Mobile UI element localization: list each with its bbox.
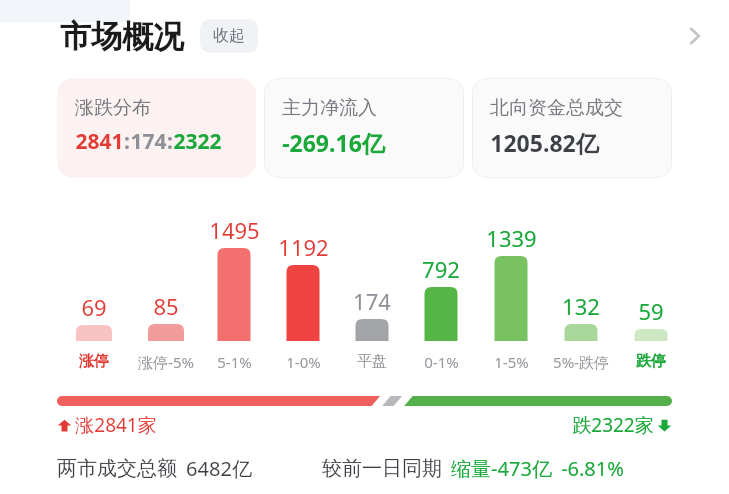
staticText: -6.81%: [561, 455, 624, 482]
staticText: 5-1%: [217, 352, 252, 372]
staticText: 1205.82亿: [490, 127, 599, 158]
staticText: 较前一日同期: [322, 456, 442, 481]
button[interactable]: 收起: [200, 19, 258, 53]
staticText: 1192: [278, 232, 329, 262]
staticText: 两市成交总额: [57, 456, 177, 481]
button[interactable]: 主力净流入: [264, 78, 464, 178]
staticText: 1339: [486, 223, 537, 253]
button[interactable]: 展开市场概况: [669, 10, 721, 62]
staticText: 85: [153, 291, 179, 321]
staticText: 市场概况: [60, 17, 184, 56]
staticText: 缩量-473亿: [451, 455, 552, 482]
staticText: 跌停: [636, 352, 666, 371]
staticText: 69: [81, 292, 107, 322]
staticText: 5%-跌停: [553, 352, 609, 372]
staticText: 收起: [213, 26, 245, 46]
staticText: 2322: [173, 127, 222, 156]
staticText: :: [167, 127, 173, 156]
staticText: 1-0%: [286, 352, 321, 372]
staticText: 涨2841家: [75, 412, 157, 438]
staticText: 1-5%: [494, 352, 529, 372]
button[interactable]: 涨跌分布: [57, 78, 256, 178]
staticText: 涨跌分布: [75, 96, 151, 120]
staticText: 0-1%: [424, 352, 459, 372]
staticText: 59: [638, 296, 664, 326]
staticText: 跌2322家: [572, 412, 654, 438]
button[interactable]: 北向资金总成交: [472, 78, 672, 178]
staticText: 涨停-5%: [138, 352, 194, 372]
staticText: :: [124, 127, 130, 156]
staticText: 涨停: [79, 352, 109, 371]
staticText: 北向资金总成交: [490, 96, 623, 120]
staticText: 2841: [75, 127, 124, 156]
staticText: -269.16亿: [282, 127, 385, 158]
staticText: 792: [422, 254, 460, 284]
staticText: 174: [353, 286, 391, 316]
staticText: 1495: [209, 215, 260, 245]
staticText: 平盘: [357, 352, 387, 371]
staticText: 132: [562, 291, 600, 321]
staticText: 174: [130, 127, 167, 156]
staticText: 6482亿: [186, 455, 252, 482]
staticText: 主力净流入: [282, 96, 377, 120]
